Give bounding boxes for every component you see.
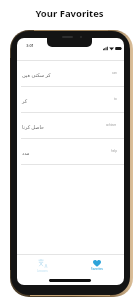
staticText: to bbox=[114, 97, 117, 101]
staticText: achieve bbox=[106, 123, 117, 127]
staticText: Lessons bbox=[37, 269, 48, 273]
staticText: Your Favorites bbox=[0, 7, 139, 20]
staticText: 3:01 bbox=[22, 43, 38, 48]
button[interactable]: کر سکتی ہیں bbox=[17, 60, 124, 86]
staticText: help bbox=[111, 149, 117, 153]
button[interactable]: حاصل کرنا bbox=[17, 112, 124, 138]
staticText: کر سکتی ہیں bbox=[22, 72, 51, 79]
staticText: can bbox=[112, 71, 117, 75]
staticText: Favorites bbox=[91, 267, 103, 271]
button[interactable]: Lessons bbox=[16, 258, 69, 276]
staticText: مدد bbox=[22, 150, 30, 156]
staticText: کر bbox=[22, 98, 28, 104]
button[interactable]: Favorites bbox=[70, 258, 123, 276]
button[interactable]: مدد bbox=[17, 138, 124, 164]
staticText: حاصل کرنا bbox=[22, 124, 45, 131]
button[interactable]: کر bbox=[17, 86, 124, 112]
